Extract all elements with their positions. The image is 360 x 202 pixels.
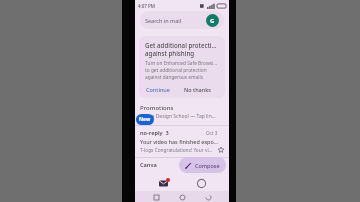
button[interactable]: Search in mail <box>140 11 224 29</box>
staticText: New to Canva? Start here ⭐ <box>140 170 214 172</box>
staticText: New <box>139 116 151 123</box>
staticText: Sep 05 <box>192 162 207 168</box>
staticText: T-logs Congratulations! Your vi… <box>140 147 215 154</box>
staticText: No thanks <box>184 86 211 93</box>
staticText: Get additional protection <box>145 41 219 49</box>
staticText: Oct 3 <box>206 130 218 136</box>
staticText: Canva <box>140 161 157 169</box>
button[interactable]: Recents <box>151 192 161 202</box>
button[interactable]: Home <box>177 192 187 202</box>
staticText: G <box>210 17 215 25</box>
button[interactable]: Meet <box>191 176 211 190</box>
staticText: against phishing <box>145 49 195 57</box>
button[interactable]: Promotions <box>135 101 229 123</box>
button[interactable]: Canva <box>135 158 229 175</box>
staticText: 4:07 PM <box>138 3 155 9</box>
button[interactable]: Compose <box>179 157 226 173</box>
staticText: Your video has finished expo… <box>140 138 219 145</box>
button[interactable]: no-reply 3 <box>135 126 229 157</box>
staticText: Search in mail <box>145 17 182 24</box>
staticText: Compose <box>195 162 220 169</box>
button[interactable]: New <box>136 114 154 125</box>
staticText: against dangerous emails <box>145 74 204 81</box>
button[interactable]: Back <box>203 192 213 202</box>
button[interactable]: Mail <box>153 176 173 190</box>
staticText: Canva Design School — Tap lin… <box>140 113 216 120</box>
staticText: Continue <box>146 86 170 93</box>
button[interactable]: Star <box>217 146 225 154</box>
staticText: to get additional protection <box>145 67 207 74</box>
staticText: no-reply 3 <box>140 129 169 137</box>
button[interactable]: Account <box>206 14 219 27</box>
button[interactable]: Continue <box>145 86 171 93</box>
staticText: Turn on Enhanced Safe Browsing <box>145 60 219 67</box>
staticText: Promotions <box>140 104 174 112</box>
button[interactable]: No thanks <box>183 86 212 93</box>
